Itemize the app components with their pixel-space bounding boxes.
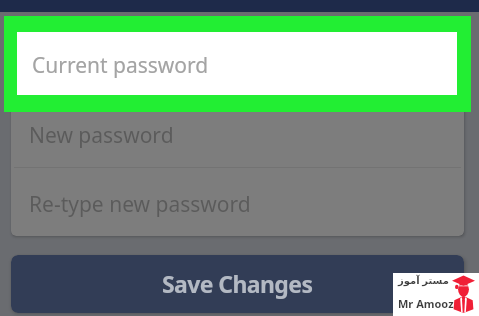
- button[interactable]: Save Changes: [11, 255, 464, 313]
- staticText: Re-type new password: [29, 190, 251, 219]
- staticText: Mr Amooz: [398, 296, 454, 311]
- staticText: Save Changes: [162, 268, 313, 299]
- staticText: New password: [29, 121, 174, 150]
- staticText: مستر آموز: [398, 273, 449, 287]
- button[interactable]: Current password: [17, 32, 457, 95]
- button[interactable]: Re-type new password: [11, 168, 464, 235]
- other: Mr Amooz logo: [452, 275, 475, 313]
- staticText: Current password: [32, 51, 209, 80]
- button[interactable]: New password: [11, 112, 464, 167]
